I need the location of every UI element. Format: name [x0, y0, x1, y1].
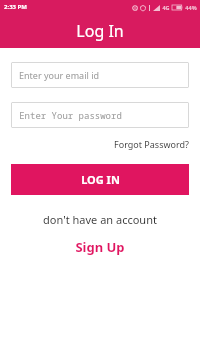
- staticText: 4G: [162, 4, 170, 11]
- staticText: 44%: [185, 4, 197, 11]
- button[interactable]: LOG IN: [11, 164, 189, 195]
- staticText: Enter your email id: [19, 69, 99, 81]
- button[interactable]: Enter your email id: [11, 62, 189, 88]
- button[interactable]: Sign Up: [0, 238, 200, 256]
- staticText: Forgot Password?: [114, 138, 189, 150]
- button[interactable]: Forgot Password?: [103, 136, 200, 152]
- staticText: Sign Up: [75, 238, 125, 256]
- staticText: LOG IN: [81, 172, 120, 187]
- staticText: Log In: [76, 20, 124, 42]
- button[interactable]: Enter Your password: [11, 102, 189, 128]
- staticText: Enter Your password: [19, 109, 122, 121]
- staticText: 2:33 PM: [4, 3, 27, 11]
- staticText: don't have an account: [43, 212, 157, 227]
